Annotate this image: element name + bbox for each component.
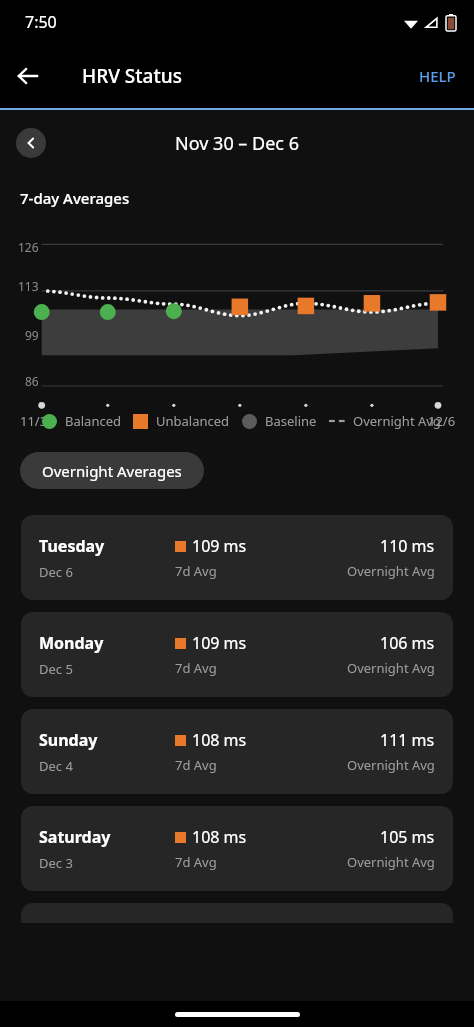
staticText: 86 <box>25 373 39 389</box>
staticText: Sunday <box>39 729 98 751</box>
staticText: HRV Status <box>82 63 182 89</box>
button[interactable]: Saturday <box>21 806 453 891</box>
staticText: 109 ms <box>192 535 247 557</box>
staticText: 7d Avg <box>175 756 217 774</box>
staticText: Overnight Avg <box>347 756 435 774</box>
staticText: 105 ms <box>380 826 435 848</box>
staticText: 7-day Averages <box>20 188 130 208</box>
button[interactable]: Tuesday <box>21 515 453 600</box>
staticText: 113 <box>18 278 39 294</box>
staticText: 99 <box>25 327 39 343</box>
staticText: Dec 4 <box>39 757 73 775</box>
staticText: Monday <box>39 632 104 654</box>
staticText: Overnight Averages <box>42 461 182 481</box>
staticText: 106 ms <box>380 632 435 654</box>
staticText: 111 ms <box>380 729 435 751</box>
staticText: Dec 3 <box>39 854 73 872</box>
button[interactable]: Monday <box>21 612 453 697</box>
staticText: Nov 30 – Dec 6 <box>175 131 299 156</box>
button[interactable]: HELP <box>401 52 474 100</box>
staticText: 110 ms <box>380 535 435 557</box>
button[interactable]: Back <box>0 48 56 104</box>
staticText: HELP <box>419 66 456 86</box>
staticText: Overnight Avg <box>347 659 435 677</box>
button[interactable]: Sunday <box>21 709 453 794</box>
staticText: Dec 5 <box>39 660 73 678</box>
staticText: Unbalanced <box>156 412 230 430</box>
staticText: 126 <box>18 239 39 255</box>
staticText: 11/30 <box>20 412 55 430</box>
staticText: Overnight Avg <box>347 853 435 871</box>
staticText: 109 ms <box>192 632 247 654</box>
staticText: 108 ms <box>192 826 247 848</box>
staticText: 7d Avg <box>175 659 217 677</box>
staticText: Tuesday <box>39 535 105 557</box>
button[interactable]: Previous week <box>16 128 46 158</box>
staticText: 7d Avg <box>175 853 217 871</box>
staticText: 12/6 <box>428 412 456 430</box>
button[interactable]: Overnight Averages <box>20 452 204 489</box>
staticText: Baseline <box>265 412 317 430</box>
staticText: Overnight Avg <box>347 562 435 580</box>
staticText: Overnight Avg <box>353 412 441 430</box>
staticText: Dec 6 <box>39 563 73 581</box>
staticText: 108 ms <box>192 729 247 751</box>
staticText: Balanced <box>65 412 121 430</box>
staticText: 7:50 <box>25 11 57 33</box>
staticText: Saturday <box>39 826 111 848</box>
staticText: 7d Avg <box>175 562 217 580</box>
